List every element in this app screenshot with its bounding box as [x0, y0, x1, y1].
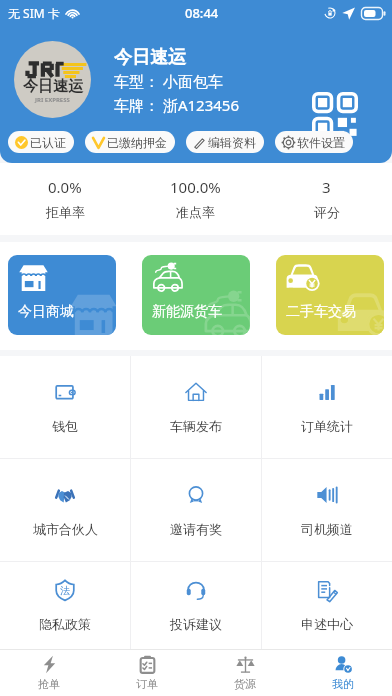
staticText: 无 SIM 卡 — [8, 5, 60, 21]
staticText: 今日速运 — [23, 77, 83, 96]
button[interactable]: 100.0% — [130, 163, 261, 235]
button[interactable]: 申述中心 — [262, 562, 392, 649]
button[interactable]: 车辆发布 — [131, 356, 261, 458]
staticText: 车辆发布 — [170, 418, 222, 434]
button[interactable]: 我的 — [294, 650, 392, 696]
staticText: 抢单 — [38, 677, 60, 691]
staticText: 08:44 — [185, 4, 219, 22]
button[interactable]: 邀请有奖 — [131, 459, 261, 561]
staticText: 今日商城 — [18, 303, 74, 321]
button[interactable]: 货源 — [196, 650, 294, 696]
button[interactable]: 法 — [0, 562, 130, 649]
button[interactable]: 已认证 — [8, 131, 74, 153]
staticText: 100.0% — [170, 177, 221, 197]
button[interactable]: 订单统计 — [262, 356, 392, 458]
staticText: 城市合伙人 — [33, 521, 98, 537]
staticText: 3 — [322, 177, 331, 197]
button[interactable]: 投诉建议 — [131, 562, 261, 649]
button[interactable]: 抢单 — [0, 650, 98, 696]
staticText: 0.0% — [48, 177, 82, 197]
staticText: 车牌： 浙A123456 — [114, 95, 239, 115]
staticText: 已缴纳押金 — [107, 135, 167, 150]
button[interactable]: 钱包 — [0, 356, 130, 458]
button[interactable]: 司机频道 — [262, 459, 392, 561]
staticText: 司机频道 — [301, 521, 353, 537]
staticText: 隐私政策 — [39, 616, 91, 632]
button[interactable]: 3 — [261, 163, 392, 235]
staticText: 我的 — [332, 677, 354, 691]
button[interactable]: 头像 — [14, 41, 91, 118]
staticText: 评分 — [314, 204, 340, 220]
staticText: 准点率 — [176, 204, 215, 220]
staticText: JRI EXPRESS — [35, 96, 70, 104]
button[interactable]: 今日商城 — [8, 255, 116, 335]
staticText: 邀请有奖 — [170, 521, 222, 537]
staticText: 投诉建议 — [170, 616, 222, 632]
button[interactable]: 已缴纳押金 — [85, 131, 175, 153]
staticText: 编辑资料 — [208, 135, 256, 150]
staticText: 货源 — [234, 677, 256, 691]
staticText: 订单统计 — [301, 418, 353, 434]
staticText: 新能源货车 — [152, 303, 222, 321]
button[interactable]: 编辑资料 — [186, 131, 264, 153]
staticText: 法 — [60, 584, 70, 597]
staticText: 二手车交易 — [286, 303, 356, 321]
staticText: 钱包 — [52, 418, 78, 434]
staticText: 车型： 小面包车 — [114, 71, 223, 91]
staticText: 拒单率 — [46, 204, 85, 220]
button[interactable]: 0.0% — [0, 163, 130, 235]
staticText: 订单 — [136, 677, 158, 691]
staticText: 申述中心 — [301, 616, 353, 632]
button[interactable]: 二维码 — [312, 92, 358, 138]
staticText: 今日速运 — [114, 46, 186, 69]
button[interactable]: 软件设置 — [275, 131, 353, 153]
button[interactable]: 订单 — [98, 650, 196, 696]
button[interactable]: 二手车交易 — [276, 255, 384, 335]
staticText: 软件设置 — [297, 135, 345, 150]
button[interactable]: 城市合伙人 — [0, 459, 130, 561]
button[interactable]: 新能源货车 — [142, 255, 250, 335]
staticText: 已认证 — [30, 135, 66, 150]
